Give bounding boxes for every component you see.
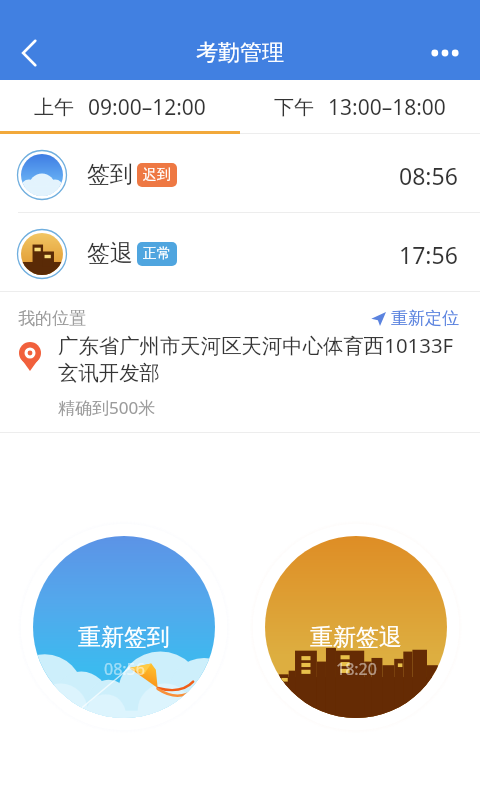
staticText: 签退 <box>87 239 133 268</box>
staticText: 迟到 <box>143 166 171 184</box>
staticText: 重新定位 <box>391 308 459 329</box>
staticText: 重新签退 <box>310 623 402 652</box>
button[interactable]: 下午 <box>240 80 480 134</box>
staticText: 重新签到 <box>78 623 170 652</box>
staticText: 13:00–18:00 <box>328 93 446 122</box>
staticText: 18:20 <box>336 658 377 680</box>
staticText: 精确到500米 <box>58 396 156 419</box>
staticText: 09:00–12:00 <box>88 93 206 122</box>
staticText: 08:56 <box>104 658 145 680</box>
button[interactable]: 重新定位 <box>367 304 463 333</box>
button[interactable]: 签到 <box>0 134 480 212</box>
button[interactable]: 重新签到 <box>24 527 224 727</box>
staticText: 正常 <box>143 245 171 263</box>
button[interactable]: 重新签退 <box>256 527 456 727</box>
button[interactable]: 上午 <box>0 80 240 134</box>
staticText: 17:56 <box>399 239 458 270</box>
staticText: 考勤管理 <box>196 39 284 67</box>
staticText: 签到 <box>87 160 133 189</box>
staticText: 广东省广州市天河区天河中心体育西10133F玄讯开发部 <box>58 331 463 386</box>
button[interactable]: More options <box>421 29 469 77</box>
staticText: 上午 <box>34 95 74 120</box>
staticText: 我的位置 <box>18 308 86 329</box>
staticText: 下午 <box>274 95 314 120</box>
staticText: 08:56 <box>399 160 458 191</box>
button[interactable]: Back <box>3 27 55 79</box>
button[interactable]: 签退 <box>0 213 480 291</box>
